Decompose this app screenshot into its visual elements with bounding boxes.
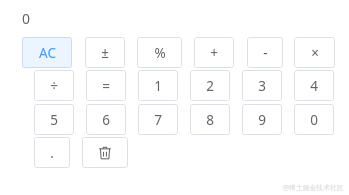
staticText: 4 — [310, 77, 318, 95]
button[interactable]: + — [194, 37, 234, 68]
button[interactable]: ÷ — [34, 70, 74, 101]
button[interactable]: - — [247, 37, 283, 68]
staticText: 9 — [258, 111, 266, 129]
staticText: 0 — [22, 9, 31, 28]
button[interactable]: × — [294, 37, 335, 68]
staticText: 3 — [258, 77, 266, 95]
staticText: × — [311, 44, 319, 62]
button[interactable]: 7 — [138, 104, 178, 135]
button[interactable]: 9 — [242, 104, 282, 135]
staticText: 1 — [154, 77, 162, 95]
staticText: - — [263, 44, 268, 62]
staticText: @稀土掘金技术社区 — [283, 183, 344, 192]
staticText: % — [154, 44, 166, 62]
button[interactable]: Delete — [82, 137, 128, 168]
button[interactable]: 6 — [86, 104, 126, 135]
staticText: ± — [101, 44, 109, 62]
staticText: 0 — [310, 111, 318, 129]
button[interactable]: AC — [22, 37, 72, 68]
staticText: 5 — [50, 111, 58, 129]
button[interactable]: . — [34, 137, 70, 168]
button[interactable]: ± — [85, 37, 125, 68]
button[interactable]: 0 — [294, 104, 334, 135]
staticText: AC — [39, 44, 56, 62]
staticText: + — [210, 44, 218, 62]
button[interactable]: 1 — [138, 70, 178, 101]
button[interactable]: 8 — [190, 104, 230, 135]
button[interactable]: 5 — [34, 104, 74, 135]
button[interactable]: = — [86, 70, 126, 101]
staticText: . — [50, 144, 54, 162]
staticText: = — [102, 77, 110, 95]
button[interactable]: 2 — [190, 70, 230, 101]
staticText: ÷ — [50, 77, 58, 95]
button[interactable]: 3 — [242, 70, 282, 101]
staticText: 2 — [206, 77, 214, 95]
staticText: 6 — [102, 111, 110, 129]
staticText: 7 — [154, 111, 162, 129]
button[interactable]: 4 — [294, 70, 334, 101]
button[interactable]: % — [137, 37, 182, 68]
staticText: 8 — [206, 111, 214, 129]
